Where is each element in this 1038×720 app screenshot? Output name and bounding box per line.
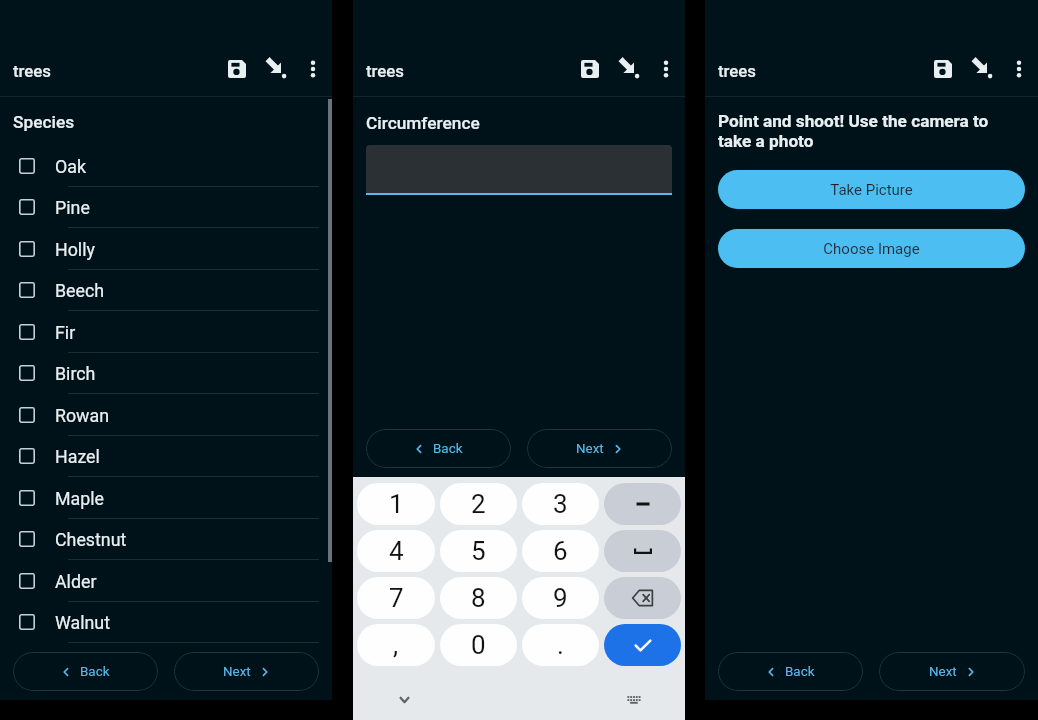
button[interactable]: More options	[645, 48, 687, 90]
staticText: Fir	[55, 322, 76, 343]
staticText: 4	[389, 536, 404, 566]
staticText: Beech	[55, 280, 105, 301]
staticText: Rowan	[55, 405, 109, 426]
staticText: trees	[13, 61, 52, 81]
button[interactable]: Walnut	[0, 601, 332, 643]
staticText: Back	[433, 441, 463, 457]
staticText: Next	[929, 664, 957, 680]
button[interactable]: Rowan	[0, 394, 332, 436]
staticText: Next	[576, 441, 604, 457]
button[interactable]: Save	[922, 48, 964, 90]
button[interactable]: Navigate	[609, 48, 651, 90]
staticText: trees	[718, 61, 757, 81]
button[interactable]: Fir	[0, 311, 332, 353]
button[interactable]: .	[522, 624, 599, 666]
button[interactable]: Take Picture	[718, 170, 1025, 209]
button[interactable]: Back	[13, 652, 158, 691]
staticText: 9	[553, 583, 568, 613]
button[interactable]: Done	[604, 624, 681, 666]
button[interactable]: Back	[718, 652, 863, 691]
button[interactable]: Circumference input	[366, 145, 672, 195]
staticText: Alder	[55, 571, 97, 592]
staticText: Chestnut	[55, 529, 127, 550]
button[interactable]: Pine	[0, 186, 332, 228]
button[interactable]: 3	[522, 483, 599, 525]
staticText: Walnut	[55, 612, 110, 633]
button[interactable]: 5	[440, 530, 517, 572]
staticText: 1	[389, 489, 404, 519]
button[interactable]: Save	[216, 48, 258, 90]
button[interactable]: 4	[357, 530, 435, 572]
staticText: Oak	[55, 156, 86, 177]
staticText: Hazel	[55, 446, 100, 467]
button[interactable]: 8	[440, 577, 517, 619]
staticText: Species	[13, 112, 75, 132]
button[interactable]: Space	[604, 530, 681, 572]
button[interactable]: Beech	[0, 269, 332, 311]
button[interactable]: 7	[357, 577, 435, 619]
button[interactable]: Maple	[0, 477, 332, 519]
staticText: Maple	[55, 488, 104, 509]
button[interactable]: Back	[366, 429, 511, 468]
button[interactable]: 1	[357, 483, 435, 525]
button[interactable]: Birch	[0, 352, 332, 394]
button[interactable]: Alder	[0, 560, 332, 602]
button[interactable]: Hazel	[0, 435, 332, 477]
staticText: Holly	[55, 239, 95, 260]
button[interactable]: Oak	[0, 145, 332, 187]
staticText: Birch	[55, 363, 96, 384]
staticText: Next	[223, 664, 251, 680]
staticText: ,	[393, 630, 399, 660]
staticText: Pine	[55, 197, 90, 218]
staticText: 8	[471, 583, 486, 613]
button[interactable]: Next	[174, 652, 319, 691]
staticText: Back	[80, 664, 110, 680]
staticText: 0	[471, 630, 486, 660]
button[interactable]: Next	[527, 429, 672, 468]
button[interactable]: Navigate	[256, 48, 298, 90]
button[interactable]: More options	[998, 48, 1038, 90]
button[interactable]: Chestnut	[0, 518, 332, 560]
button[interactable]: Change keyboard	[621, 686, 647, 712]
staticText: Circumference	[366, 113, 480, 133]
staticText: trees	[366, 61, 405, 81]
staticText: .	[557, 630, 564, 660]
staticText: 2	[471, 489, 486, 519]
button[interactable]: 9	[522, 577, 599, 619]
staticText: Back	[785, 664, 815, 680]
button[interactable]: 0	[440, 624, 517, 666]
staticText: Choose Image	[823, 240, 920, 258]
staticText: Point and shoot! Use the camera to take …	[718, 111, 1025, 151]
button[interactable]: Holly	[0, 228, 332, 270]
staticText: Take Picture	[830, 181, 913, 199]
button[interactable]: Save	[569, 48, 611, 90]
button[interactable]: Next	[879, 652, 1025, 691]
button[interactable]: More options	[292, 48, 334, 90]
staticText: 6	[553, 536, 568, 566]
button[interactable]: Minus	[604, 483, 681, 525]
staticText: 5	[471, 536, 486, 566]
button[interactable]: 2	[440, 483, 517, 525]
button[interactable]: Choose Image	[718, 229, 1025, 268]
button[interactable]: ,	[357, 624, 435, 666]
staticText: 7	[389, 583, 404, 613]
button[interactable]: Navigate	[962, 48, 1004, 90]
staticText: 3	[553, 489, 568, 519]
button[interactable]: Hide keyboard	[391, 687, 417, 713]
button[interactable]: 6	[522, 530, 599, 572]
button[interactable]: Backspace	[604, 577, 681, 619]
